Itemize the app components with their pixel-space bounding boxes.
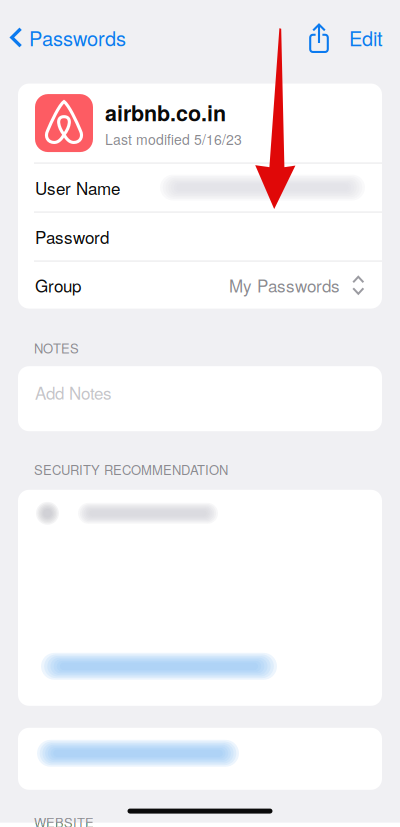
staticText: User Name (35, 175, 120, 200)
button[interactable]: User Name (18, 164, 382, 212)
staticText: SECURITY RECOMMENDATION (34, 460, 228, 479)
button[interactable] (18, 728, 382, 790)
button[interactable]: Group (18, 262, 382, 309)
staticText: Password (35, 224, 109, 249)
staticText: NOTES (34, 339, 79, 357)
staticText: Passwords (29, 23, 126, 52)
button[interactable]: Share (300, 14, 329, 62)
staticText: WEBSITE (34, 813, 94, 827)
button[interactable]: Add Notes (18, 366, 382, 431)
button[interactable]: Password (18, 213, 382, 261)
button[interactable]: Edit (329, 14, 400, 62)
staticText: Add Notes (35, 380, 112, 404)
staticText: airbnb.co.in (105, 97, 226, 128)
staticText: Edit (349, 23, 383, 52)
staticText: My Passwords (229, 273, 340, 297)
staticText: Last modified 5/16/23 (105, 129, 242, 149)
staticText: Group (35, 273, 81, 297)
button[interactable]: Passwords (0, 14, 136, 62)
